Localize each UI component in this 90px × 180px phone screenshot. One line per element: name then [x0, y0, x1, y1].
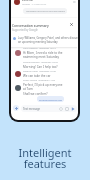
- button[interactable]: Close summary: [70, 23, 73, 26]
- button[interactable]: Lucy Williams Yesterday 10:14: [23, 47, 63, 59]
- staticText: Lorena: [22, 0, 33, 2]
- staticText: Supported by Google: [12, 28, 38, 32]
- button[interactable]: Lorena: [14, 0, 78, 5]
- staticText: Mobile · +1 555 0134: [22, 2, 47, 5]
- staticText: Shelly Moore Yesterday 11:02: [23, 79, 56, 82]
- staticText: Messages are end-to-end encrypted: [26, 10, 65, 13]
- button[interactable]: Video call: [73, 0, 77, 4]
- button[interactable]: Emoji: [59, 107, 63, 111]
- staticText: Gregory Patel Yesterday 10:40: [23, 70, 56, 73]
- button[interactable]: Text message: [23, 105, 75, 112]
- staticText: Sounds good to me: [39, 98, 62, 101]
- staticText: Hi Mom, I need a ride to the: [23, 51, 63, 55]
- staticText: at 7am: [23, 87, 33, 91]
- button[interactable]: Add attachment: [13, 105, 19, 111]
- staticText: Shall we confirm?: [23, 92, 48, 96]
- staticText: Lucy Williams, Gregory Patel, and others…: [18, 36, 78, 40]
- staticText: Chiara Esposito Yesterday 10:22: [23, 61, 58, 64]
- staticText: Conversation summary: [12, 23, 49, 27]
- staticText: Intelligent features: [0, 145, 90, 171]
- button[interactable]: Sounds good to me: [39, 96, 62, 102]
- button[interactable]: Shelly Moore Yesterday 11:02: [23, 79, 63, 96]
- button[interactable]: Chiara Esposito Yesterday 10:22: [23, 61, 58, 69]
- button[interactable]: Conversation summary: [11, 18, 77, 47]
- staticText: Morning! Can I help too?: [23, 65, 58, 69]
- staticText: swimming meet Saturday: [23, 55, 59, 59]
- staticText: Lucy Williams Yesterday 10:14: [23, 47, 56, 50]
- staticText: Text message: [23, 107, 41, 111]
- staticText: Perfect, I'll pick up everyone: [23, 83, 63, 87]
- button[interactable]: Send: [71, 107, 75, 111]
- button[interactable]: Gregory Patel Yesterday 10:40: [23, 70, 56, 78]
- button[interactable]: Camera: [65, 107, 69, 111]
- staticText: an upcoming meeting Saturday: [18, 40, 58, 44]
- staticText: We can take the car: [23, 74, 51, 78]
